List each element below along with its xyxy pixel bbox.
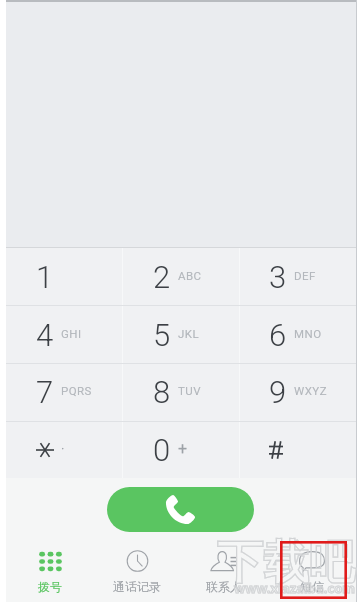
- staticText: www.xiazaiba.com: [234, 579, 355, 597]
- staticText: 1: [36, 259, 54, 295]
- staticText: 6: [269, 317, 287, 353]
- staticText: MNO: [294, 327, 322, 340]
- button[interactable]: 通话记录: [93, 541, 180, 602]
- staticText: TUV: [178, 384, 201, 397]
- button[interactable]: 5: [123, 306, 240, 364]
- button[interactable]: 3: [239, 248, 356, 306]
- button[interactable]: [239, 421, 356, 479]
- button[interactable]: 9: [239, 363, 356, 421]
- staticText: +: [178, 439, 188, 458]
- staticText: DEF: [294, 269, 316, 282]
- staticText: 3: [269, 259, 287, 295]
- staticText: 0: [153, 432, 171, 468]
- staticText: ABC: [178, 269, 202, 282]
- staticText: 8: [153, 374, 171, 410]
- button[interactable]: 联系人: [180, 541, 268, 602]
- staticText: 4: [36, 317, 54, 353]
- button[interactable]: 8: [123, 363, 240, 421]
- button[interactable]: 7: [6, 363, 123, 421]
- staticText: 5: [153, 317, 171, 353]
- staticText: 联系人: [206, 579, 242, 594]
- staticText: 拨号: [38, 579, 62, 594]
- button[interactable]: 短信: [268, 541, 356, 602]
- staticText: GHI: [61, 327, 82, 340]
- staticText: PQRS: [61, 384, 92, 397]
- button[interactable]: 4: [6, 306, 123, 364]
- staticText: 2: [153, 259, 171, 295]
- button[interactable]: ·: [6, 421, 123, 479]
- staticText: 通话记录: [113, 579, 161, 594]
- staticText: WXYZ: [294, 384, 328, 397]
- staticText: 7: [36, 374, 54, 410]
- staticText: JKL: [178, 327, 200, 340]
- staticText: 下载吧: [217, 534, 355, 592]
- staticText: 短信: [300, 579, 324, 594]
- button[interactable]: 6: [239, 306, 356, 364]
- button[interactable]: Call: [107, 487, 254, 532]
- staticText: ·: [61, 441, 65, 456]
- button[interactable]: 2: [123, 248, 240, 306]
- button[interactable]: 1: [6, 248, 123, 306]
- button[interactable]: 0: [123, 421, 240, 479]
- staticText: 9: [269, 374, 287, 410]
- button[interactable]: 拨号: [6, 541, 93, 602]
